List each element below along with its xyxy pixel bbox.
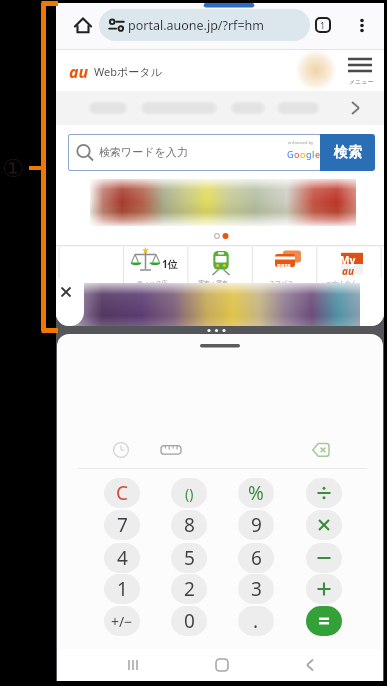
staticText: スマパス (269, 279, 294, 287)
staticText: % (248, 480, 264, 506)
staticText: 7 (117, 512, 128, 538)
staticText: ① (2, 154, 25, 180)
button[interactable]: Close (56, 278, 84, 326)
staticText: . (253, 608, 259, 634)
button[interactable]: History (109, 438, 133, 462)
button[interactable]: Backspace (312, 438, 336, 462)
button[interactable] (306, 478, 342, 508)
staticText: 1 (117, 576, 128, 602)
button[interactable]: 検索 (320, 134, 375, 171)
button[interactable]: Home (70, 13, 96, 39)
button[interactable] (306, 606, 342, 636)
button[interactable]: C (104, 478, 140, 508)
staticText: +/− (111, 612, 133, 631)
staticText: 9 (251, 512, 262, 538)
staticText: メニュー (349, 78, 374, 86)
staticText: 8 (184, 512, 195, 538)
staticText: 3 (251, 576, 262, 602)
staticText: auかんたん… (326, 279, 363, 287)
button[interactable]: . (238, 606, 274, 636)
staticText: G (287, 148, 294, 160)
button[interactable]: +/− (104, 606, 140, 636)
staticText: portal.auone.jp/?rf=hm (128, 17, 264, 34)
staticText: g (306, 148, 312, 160)
button[interactable]: 0 (171, 606, 207, 636)
staticText: 検索ワードを入力 (99, 145, 188, 159)
button[interactable]: portal.auone.jp/?rf=hm (99, 9, 310, 41)
staticText: ティック店 (137, 279, 168, 287)
staticText: 0 (184, 608, 195, 634)
button[interactable]: 8 (171, 510, 207, 540)
button[interactable]: 9 (238, 510, 274, 540)
staticText: pass (277, 261, 291, 269)
staticText: 1位 (162, 257, 178, 271)
button[interactable]: 6 (238, 543, 274, 573)
staticText: au (69, 61, 89, 83)
button[interactable]: Menu (342, 53, 380, 89)
staticText: 5 (184, 545, 195, 571)
staticText: Webポータル (94, 64, 162, 79)
staticText: C (116, 480, 129, 506)
staticText: 4 (117, 545, 128, 571)
button[interactable]: 1 (104, 574, 140, 604)
staticText: l (312, 148, 315, 160)
button[interactable] (306, 574, 342, 604)
button[interactable]: My (318, 245, 382, 287)
button[interactable]: More options (352, 15, 372, 35)
button[interactable] (90, 179, 356, 226)
button[interactable] (56, 283, 384, 326)
button[interactable]: % (238, 478, 274, 508)
button[interactable]: 4 (104, 543, 140, 573)
staticText: 2 (184, 576, 195, 602)
button[interactable]: 1位 (125, 245, 189, 287)
staticText: enhanced by (288, 140, 314, 146)
staticText: () (185, 484, 194, 503)
staticText: My (340, 253, 356, 267)
button[interactable]: pass (254, 245, 318, 287)
staticText: 電車・電車 (198, 279, 228, 287)
button[interactable]: 7 (104, 510, 140, 540)
button[interactable]: 検索ワードを入力 (68, 134, 321, 171)
button[interactable] (306, 543, 342, 573)
staticText: au (342, 264, 354, 278)
button[interactable]: () (171, 478, 207, 508)
button[interactable] (306, 510, 342, 540)
staticText: 1 (320, 19, 326, 31)
staticText: 6 (251, 545, 262, 571)
button[interactable]: 2 (171, 574, 207, 604)
button[interactable]: 3 (238, 574, 274, 604)
button[interactable]: 5 (171, 543, 207, 573)
staticText: o (294, 148, 300, 160)
staticText: o (300, 148, 306, 160)
button[interactable]: Tabs (315, 17, 331, 33)
staticText: e (315, 148, 321, 160)
staticText: 検索 (334, 144, 362, 162)
button[interactable]: 電車・電車 (189, 245, 253, 287)
button[interactable]: Unit converter (160, 438, 184, 462)
